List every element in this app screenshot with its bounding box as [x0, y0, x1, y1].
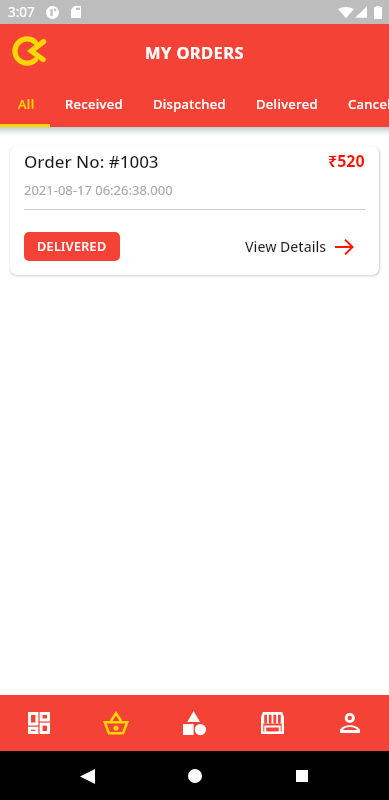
button[interactable]: Dashboard — [0, 695, 77, 751]
staticText: Cancelled — [348, 95, 389, 113]
button[interactable]: Orders — [77, 695, 155, 751]
button[interactable]: DELIVERED — [24, 232, 120, 261]
button[interactable]: Home — [175, 756, 215, 796]
staticText: All — [18, 95, 35, 113]
staticText: Dispatched — [153, 95, 226, 113]
staticText: Received — [65, 95, 123, 113]
button[interactable]: Order No: #1003 — [10, 146, 379, 275]
staticText: MY ORDERS — [145, 41, 244, 63]
button[interactable]: Logo — [9, 33, 47, 71]
button[interactable]: Cancelled — [333, 80, 389, 127]
staticText: 2021-08-17 06:26:38.000 — [24, 181, 173, 199]
button[interactable]: Store — [233, 695, 311, 751]
button[interactable]: Dispatched — [138, 80, 241, 127]
button[interactable]: Back — [67, 756, 107, 796]
button[interactable]: Recents — [282, 756, 322, 796]
button[interactable]: Categories — [155, 695, 233, 751]
staticText: View Details — [245, 237, 327, 256]
button[interactable]: Received — [50, 80, 138, 127]
staticText: 3:07 — [8, 3, 35, 21]
staticText: Delivered — [256, 95, 318, 113]
button[interactable]: All — [3, 80, 50, 127]
button[interactable]: View Details — [245, 237, 365, 256]
staticText: ₹520 — [328, 150, 365, 172]
button[interactable]: Account — [311, 695, 389, 751]
staticText: DELIVERED — [37, 238, 107, 255]
button[interactable]: Delivered — [241, 80, 333, 127]
staticText: Order No: #1003 — [24, 150, 159, 173]
